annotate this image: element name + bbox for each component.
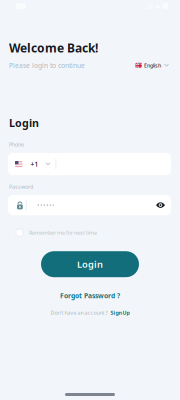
staticText: Sign Up — [110, 309, 129, 316]
staticText: Login — [9, 116, 39, 130]
button[interactable]: Forgot Password ? — [0, 291, 180, 300]
staticText: Please login to continue — [9, 61, 85, 70]
staticText: Don't have an account ? — [50, 309, 107, 316]
staticText: Forgot Password ? — [60, 291, 120, 300]
button[interactable]: Remember me for next time — [16, 229, 171, 236]
button[interactable]: Sign Up — [107, 309, 129, 316]
staticText: English — [144, 62, 161, 69]
staticText: Remember me for next time — [29, 229, 97, 236]
staticText: Password — [9, 183, 33, 190]
staticText: Login — [77, 258, 103, 270]
staticText: Phone — [9, 141, 24, 148]
button[interactable]: English — [135, 62, 171, 69]
staticText: Welcome Back! — [9, 40, 98, 56]
staticText: +1 — [30, 160, 38, 168]
button[interactable]: Login — [41, 251, 139, 277]
